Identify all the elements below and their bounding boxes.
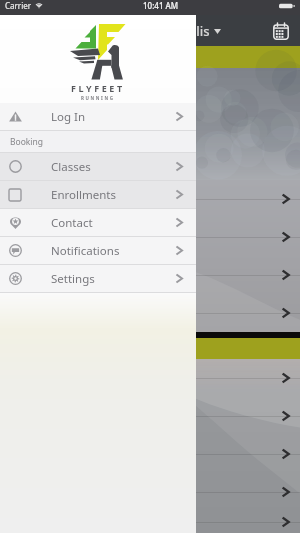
staticText: Booking	[10, 136, 44, 148]
button[interactable]: Classes	[0, 153, 196, 180]
button[interactable]	[0, 180, 300, 218]
button[interactable]: Log In	[0, 103, 196, 130]
staticText: Carrier	[5, 0, 32, 11]
button[interactable]: Settings	[0, 265, 196, 292]
button[interactable]	[0, 473, 300, 511]
button[interactable]: Calendar	[267, 17, 295, 45]
button[interactable]	[0, 256, 300, 294]
staticText: Notifications	[51, 243, 120, 259]
staticText: Indianapolis	[133, 22, 210, 40]
staticText: Settings	[51, 271, 95, 287]
staticText: Contact	[51, 215, 93, 231]
staticText: Classes	[51, 159, 91, 175]
staticText: RUNNING	[81, 95, 115, 101]
button[interactable]: Notifications	[0, 237, 196, 264]
button[interactable]	[0, 397, 300, 435]
staticText: 10:41 AM	[143, 0, 179, 11]
button[interactable]	[0, 218, 300, 256]
button[interactable]	[0, 511, 300, 533]
button[interactable]: Contact	[0, 209, 196, 236]
button[interactable]	[0, 359, 300, 397]
button[interactable]: Enrollments	[0, 181, 196, 208]
button[interactable]	[0, 294, 300, 332]
staticText: FLYFEET	[71, 82, 125, 94]
staticText: Enrollments	[51, 187, 116, 203]
button[interactable]: Indianapolis	[133, 22, 221, 40]
staticText: Log In	[51, 109, 86, 125]
button[interactable]	[0, 435, 300, 473]
